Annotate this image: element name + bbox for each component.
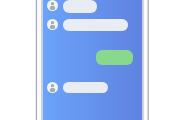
button[interactable]: Message from contact [63,19,128,31]
button[interactable]: Contact avatar [47,19,58,30]
button[interactable]: Message from contact [63,82,108,93]
button[interactable]: Contact avatar [47,82,58,93]
button[interactable]: Message from contact [63,0,97,13]
button[interactable]: Sent message [96,50,133,65]
button[interactable]: Contact avatar [47,0,58,11]
